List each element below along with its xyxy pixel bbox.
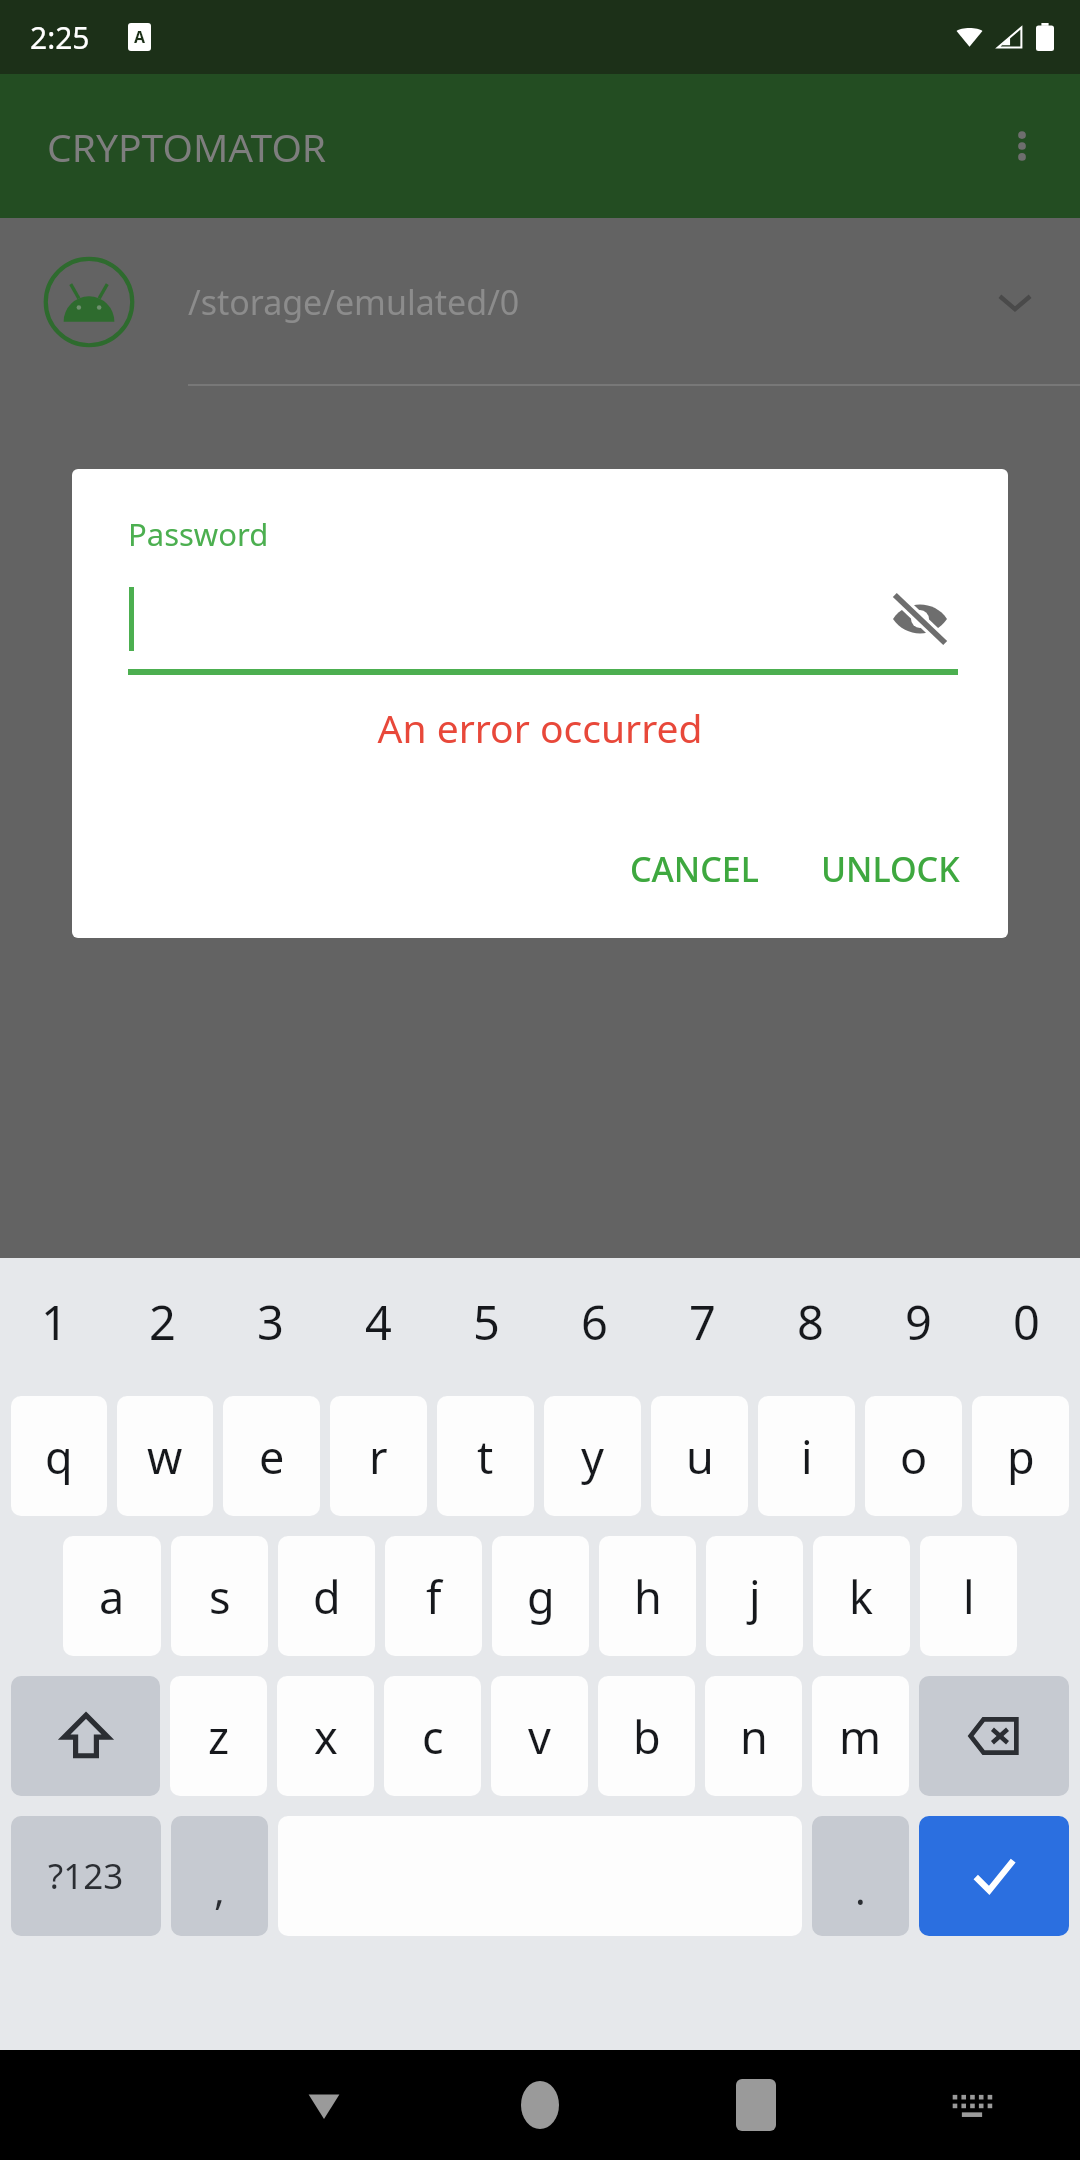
staticText: /storage/emulated/0 — [188, 279, 520, 325]
button[interactable]: CANCEL — [608, 832, 781, 906]
staticText: 3 — [257, 1290, 284, 1354]
staticText: r — [369, 1426, 388, 1487]
button[interactable]: a — [63, 1536, 161, 1656]
button[interactable]: 3 — [216, 1258, 324, 1386]
staticText: d — [313, 1566, 341, 1627]
button[interactable]: Enter — [919, 1816, 1069, 1936]
button[interactable]: f — [385, 1536, 482, 1656]
staticText: o — [900, 1426, 928, 1487]
staticText: v — [528, 1706, 551, 1767]
staticText: g — [527, 1566, 555, 1627]
staticText: A — [134, 26, 146, 48]
staticText: 5 — [473, 1290, 500, 1354]
button[interactable]: UNLOCK — [799, 832, 982, 906]
button[interactable]: Backspace — [919, 1676, 1069, 1796]
staticText: Password — [128, 513, 269, 555]
button[interactable]: Shift — [11, 1676, 160, 1796]
button[interactable]: 4 — [324, 1258, 432, 1386]
staticText: ?123 — [48, 1852, 124, 1900]
staticText: i — [801, 1426, 813, 1487]
button[interactable]: g — [492, 1536, 589, 1656]
button[interactable]: q — [11, 1396, 107, 1516]
button[interactable]: 0 — [972, 1258, 1080, 1386]
button[interactable]: w — [117, 1396, 213, 1516]
staticText: f — [426, 1566, 442, 1627]
button[interactable]: b — [598, 1676, 695, 1796]
staticText: n — [740, 1706, 768, 1767]
staticText: j — [749, 1566, 761, 1627]
staticText: e — [259, 1426, 285, 1487]
button[interactable]: l — [920, 1536, 1017, 1656]
button[interactable]: 8 — [756, 1258, 864, 1386]
staticText: , — [214, 1862, 225, 1916]
staticText: m — [839, 1706, 882, 1767]
staticText: 7 — [689, 1290, 716, 1354]
button[interactable]: s — [171, 1536, 268, 1656]
staticText: t — [477, 1426, 494, 1487]
button[interactable]: z — [170, 1676, 267, 1796]
button[interactable]: t — [437, 1396, 534, 1516]
button[interactable]: x — [277, 1676, 374, 1796]
button[interactable]: Hide keyboard — [216, 2050, 432, 2160]
staticText: y — [581, 1426, 604, 1487]
button[interactable]: p — [972, 1396, 1069, 1516]
button[interactable]: . — [812, 1816, 909, 1936]
button[interactable]: r — [330, 1396, 427, 1516]
button[interactable]: c — [384, 1676, 481, 1796]
staticText: CANCEL — [630, 846, 759, 892]
button[interactable]: v — [491, 1676, 588, 1796]
button[interactable]: Show password — [880, 579, 960, 659]
button[interactable]: e — [223, 1396, 320, 1516]
staticText: u — [686, 1426, 714, 1487]
button[interactable]: /storage/emulated/0 — [0, 218, 1080, 386]
button[interactable]: More options — [984, 108, 1060, 184]
staticText: w — [147, 1426, 183, 1487]
staticText: 0 — [1013, 1290, 1040, 1354]
staticText: s — [209, 1566, 231, 1627]
staticText: q — [45, 1426, 73, 1487]
button[interactable]: u — [651, 1396, 748, 1516]
staticText: 4 — [365, 1290, 392, 1354]
staticText: b — [633, 1706, 661, 1767]
button[interactable]: 6 — [540, 1258, 648, 1386]
staticText: An error occurred — [72, 701, 1008, 754]
button[interactable]: h — [599, 1536, 696, 1656]
button[interactable]: Recents — [648, 2050, 864, 2160]
button[interactable]: 2 — [108, 1258, 216, 1386]
staticText: a — [99, 1566, 125, 1627]
staticText: CRYPTOMATOR — [47, 120, 327, 173]
staticText: 9 — [905, 1290, 932, 1354]
staticText: 2:25 — [30, 17, 90, 58]
staticText: UNLOCK — [821, 846, 960, 892]
staticText: l — [963, 1566, 975, 1627]
button[interactable]: , — [171, 1816, 268, 1936]
button[interactable]: y — [544, 1396, 641, 1516]
staticText: . — [855, 1862, 866, 1916]
staticText: p — [1007, 1426, 1035, 1487]
button[interactable]: Switch keyboard — [864, 2050, 1080, 2160]
staticText: c — [422, 1706, 444, 1767]
button[interactable]: 5 — [432, 1258, 540, 1386]
staticText: x — [314, 1706, 338, 1767]
button[interactable]: i — [758, 1396, 855, 1516]
staticText: z — [208, 1706, 230, 1767]
staticText: 1 — [41, 1290, 68, 1354]
staticText: 6 — [581, 1290, 608, 1354]
button[interactable]: o — [865, 1396, 962, 1516]
staticText: h — [634, 1566, 662, 1627]
staticText: 2 — [149, 1290, 176, 1354]
button[interactable]: m — [812, 1676, 909, 1796]
button[interactable]: 9 — [864, 1258, 972, 1386]
staticText: 8 — [797, 1290, 824, 1354]
button[interactable]: d — [278, 1536, 375, 1656]
button[interactable]: Home — [432, 2050, 648, 2160]
staticText: k — [849, 1566, 874, 1627]
button[interactable]: ?123 — [11, 1816, 161, 1936]
button[interactable]: j — [706, 1536, 803, 1656]
button[interactable]: 7 — [648, 1258, 756, 1386]
button[interactable]: k — [813, 1536, 910, 1656]
button[interactable]: n — [705, 1676, 802, 1796]
button[interactable]: 1 — [0, 1258, 108, 1386]
